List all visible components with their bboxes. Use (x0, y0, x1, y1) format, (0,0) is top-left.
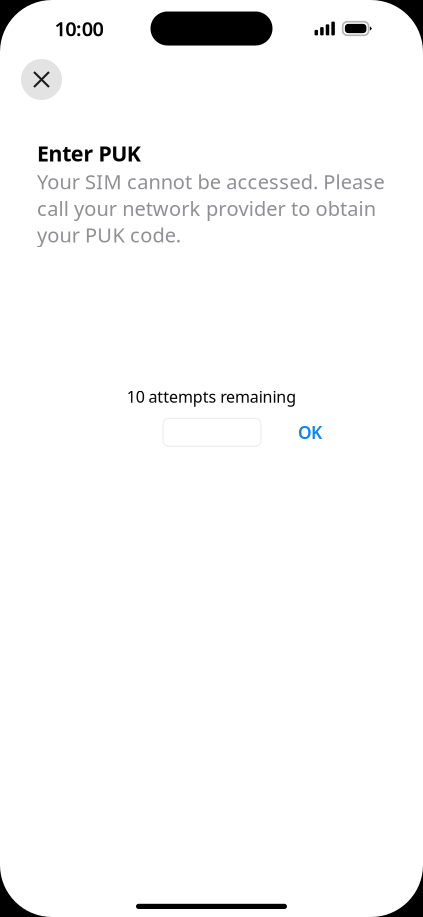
button[interactable]: OK (290, 418, 330, 446)
staticText: Enter PUK (37, 139, 141, 167)
staticText: Your SIM cannot be accessed. Please call… (37, 168, 384, 248)
staticText: 10:00 (55, 15, 103, 42)
button[interactable]: Close (21, 59, 62, 100)
staticText: 10 attempts remaining (127, 386, 296, 407)
staticText: OK (298, 421, 322, 444)
button[interactable]: PUK code (163, 418, 261, 446)
